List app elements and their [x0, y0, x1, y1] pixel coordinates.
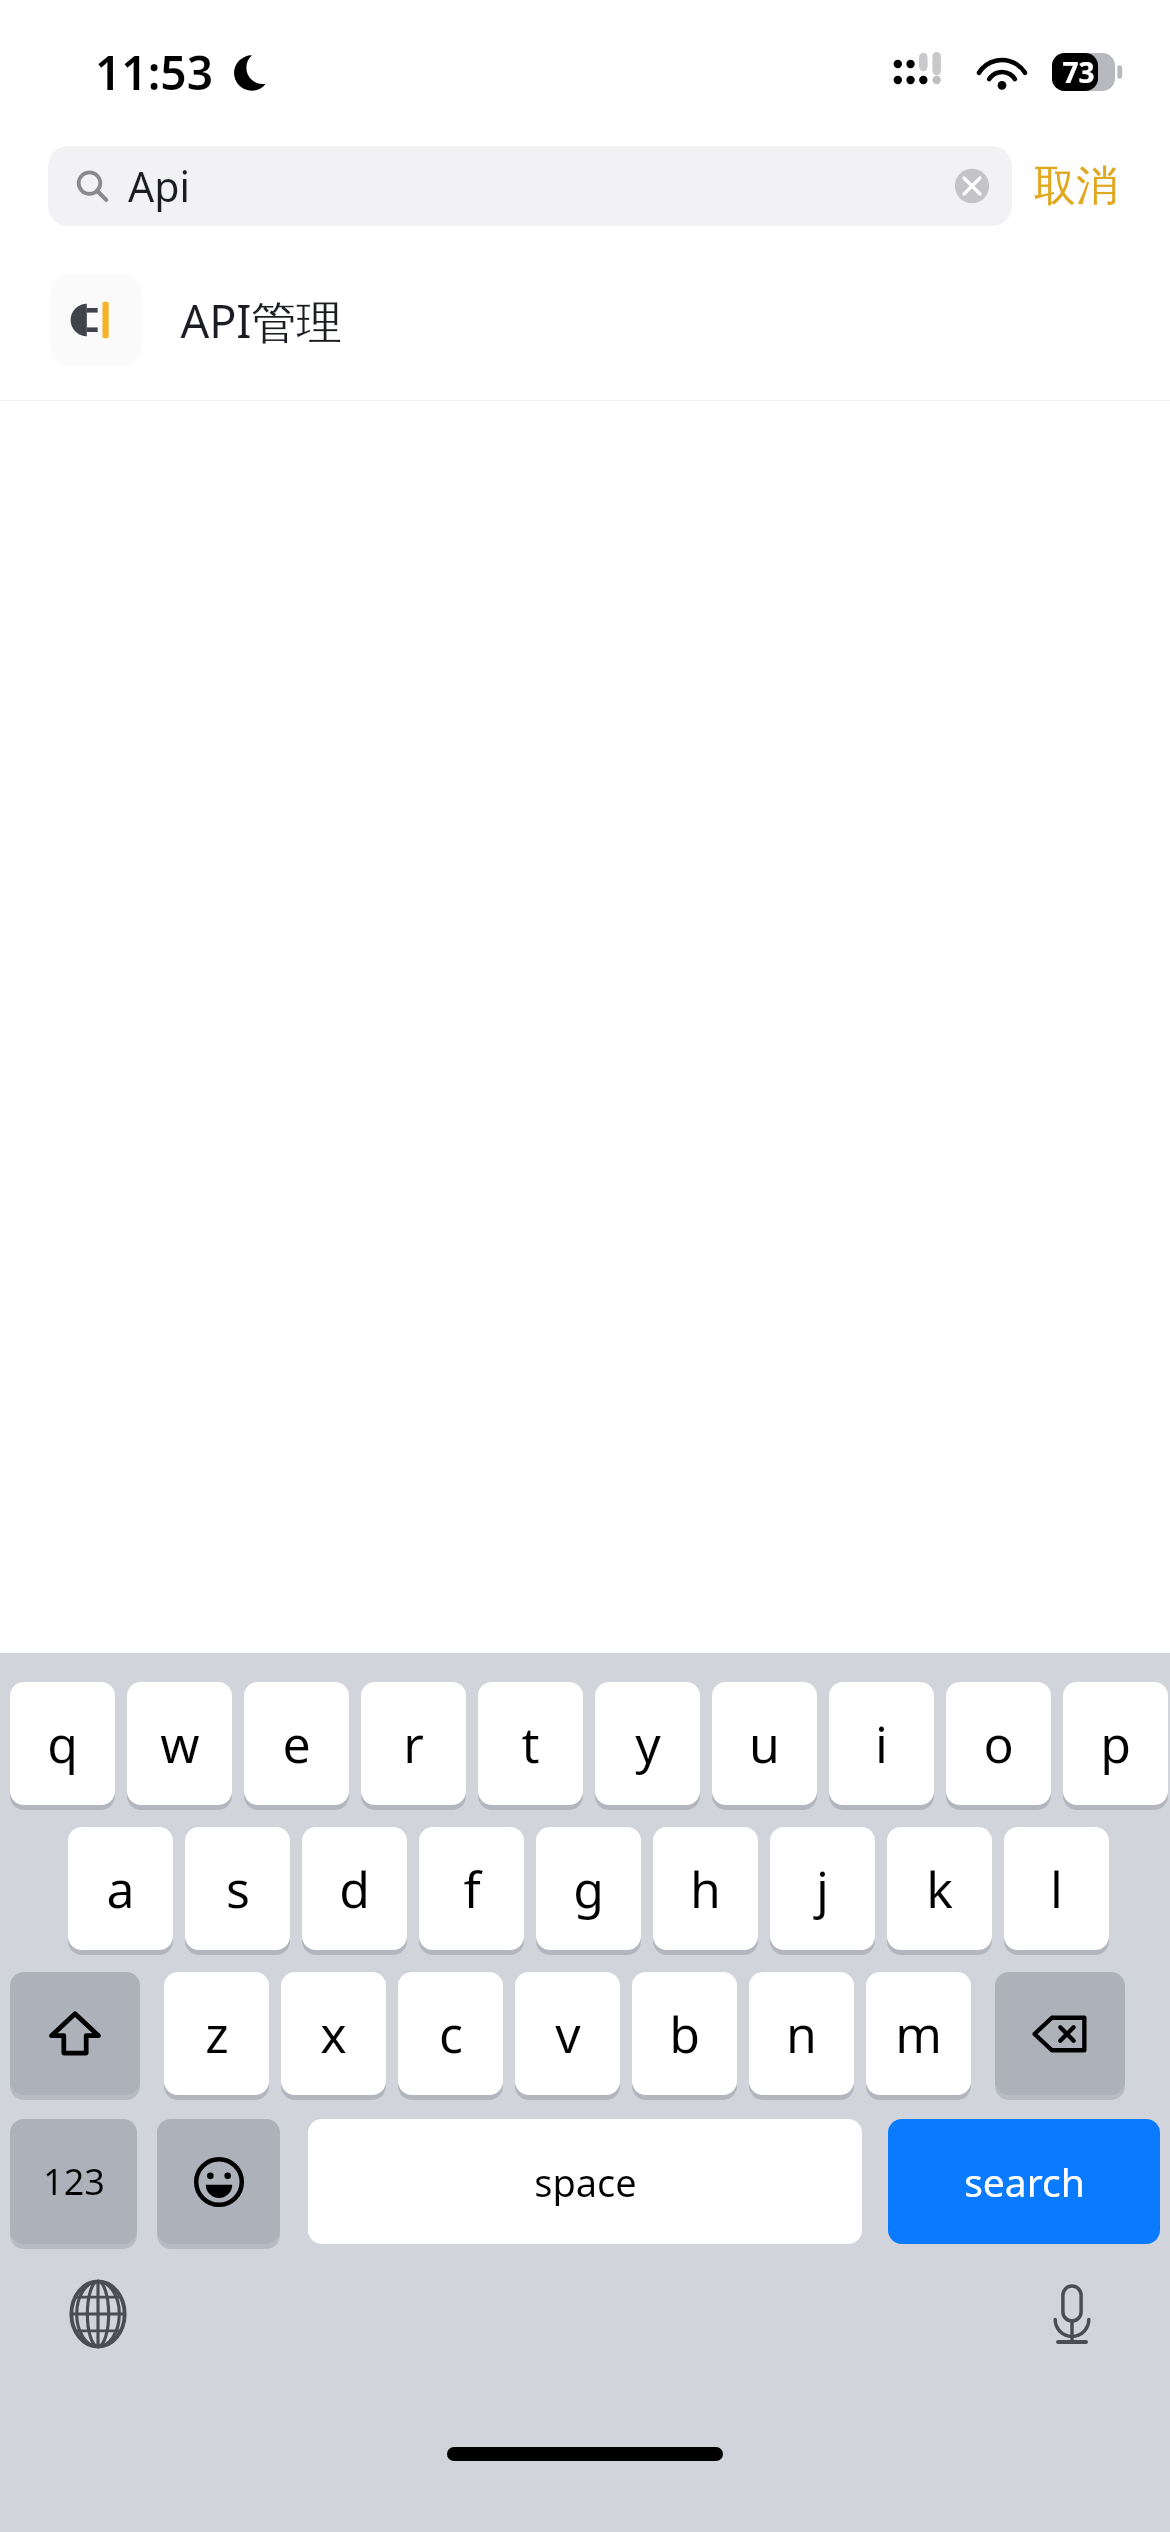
button[interactable]: search	[888, 2119, 1160, 2244]
staticText: 73	[1062, 53, 1095, 91]
button[interactable]: Emoji	[157, 2119, 280, 2244]
staticText: d	[339, 1855, 370, 1923]
staticText: w	[160, 1710, 200, 1778]
button[interactable]: b	[632, 1972, 737, 2095]
staticText: z	[205, 2000, 229, 2068]
button[interactable]: n	[749, 1972, 854, 2095]
staticText: b	[669, 2000, 700, 2068]
button[interactable]: c	[398, 1972, 503, 2095]
staticText: l	[1050, 1855, 1063, 1923]
button[interactable]: l	[1004, 1827, 1109, 1950]
staticText: s	[226, 1855, 250, 1923]
button[interactable]: Backspace	[995, 1972, 1125, 2095]
button[interactable]: t	[478, 1682, 583, 1805]
staticText: API管理	[180, 290, 342, 351]
staticText: y	[635, 1710, 661, 1778]
button[interactable]: 取消	[1012, 146, 1140, 226]
button[interactable]: m	[866, 1972, 971, 2095]
staticText: p	[1100, 1710, 1131, 1778]
staticText: a	[106, 1855, 135, 1923]
staticText: x	[320, 2000, 347, 2068]
button[interactable]: 123	[10, 2119, 137, 2244]
button[interactable]: e	[244, 1682, 349, 1805]
staticText: h	[690, 1855, 721, 1923]
staticText: r	[403, 1710, 424, 1778]
staticText: Api	[128, 158, 190, 214]
staticText: m	[895, 2000, 942, 2068]
button[interactable]: Shift	[10, 1972, 140, 2095]
button[interactable]: v	[515, 1972, 620, 2095]
staticText: v	[555, 2000, 581, 2068]
staticText: g	[573, 1855, 604, 1923]
staticText: n	[786, 2000, 817, 2068]
staticText: q	[47, 1710, 78, 1778]
staticText: t	[521, 1710, 540, 1778]
button[interactable]: space	[308, 2119, 862, 2244]
staticText: i	[875, 1710, 888, 1778]
button[interactable]: d	[302, 1827, 407, 1950]
button[interactable]: j	[770, 1827, 875, 1950]
staticText: e	[282, 1710, 311, 1778]
staticText: f	[463, 1855, 481, 1923]
button[interactable]: g	[536, 1827, 641, 1950]
button[interactable]: q	[10, 1682, 115, 1805]
button[interactable]: Clear text	[950, 164, 994, 208]
button[interactable]: p	[1063, 1682, 1168, 1805]
button[interactable]: API管理	[0, 240, 1170, 400]
button[interactable]: h	[653, 1827, 758, 1950]
staticText: u	[749, 1710, 780, 1778]
staticText: k	[926, 1855, 953, 1923]
button[interactable]: z	[164, 1972, 269, 2095]
button[interactable]: w	[127, 1682, 232, 1805]
button[interactable]: o	[946, 1682, 1051, 1805]
staticText: space	[534, 2156, 637, 2208]
button[interactable]: x	[281, 1972, 386, 2095]
staticText: o	[983, 1710, 1014, 1778]
staticText: 取消	[1034, 160, 1118, 213]
button[interactable]: k	[887, 1827, 992, 1950]
button[interactable]: s	[185, 1827, 290, 1950]
staticText: 11:53	[95, 41, 213, 104]
button[interactable]: a	[68, 1827, 173, 1950]
button[interactable]: Api	[48, 146, 1012, 226]
button[interactable]: r	[361, 1682, 466, 1805]
button[interactable]: i	[829, 1682, 934, 1805]
staticText: j	[816, 1855, 829, 1923]
button[interactable]: Change keyboard language	[50, 2266, 146, 2362]
button[interactable]: Dictation	[1024, 2266, 1120, 2362]
button[interactable]: y	[595, 1682, 700, 1805]
button[interactable]: u	[712, 1682, 817, 1805]
button[interactable]: f	[419, 1827, 524, 1950]
staticText: 123	[43, 2157, 105, 2206]
staticText: search	[964, 2155, 1085, 2208]
staticText: c	[439, 2000, 463, 2068]
